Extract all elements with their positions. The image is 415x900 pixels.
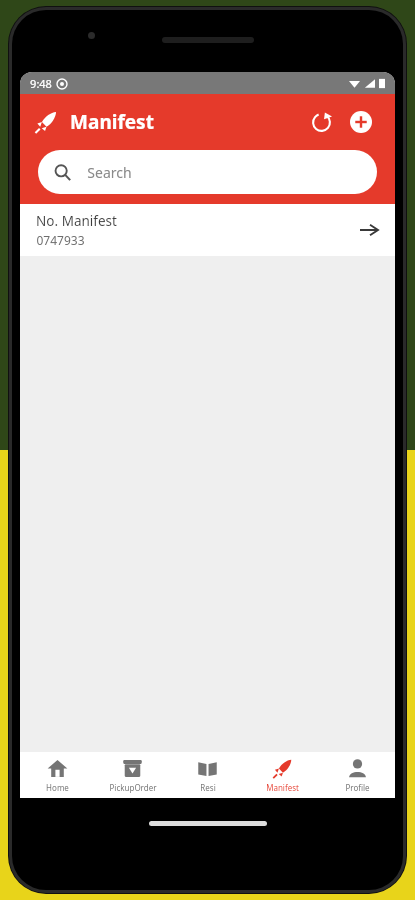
staticText: 9:48 — [30, 76, 52, 91]
staticText: Profile — [345, 782, 370, 793]
staticText: Search — [87, 163, 132, 182]
button[interactable]: Profile — [320, 752, 395, 798]
staticText: PickupOrder — [109, 782, 157, 793]
button[interactable]: Refresh — [301, 102, 341, 142]
staticText: Resi — [200, 782, 216, 793]
button[interactable]: Manifest — [245, 752, 320, 798]
staticText: Manifest — [70, 109, 154, 135]
staticText: Manifest — [266, 782, 299, 793]
staticText: Home — [46, 782, 69, 793]
button[interactable]: PickupOrder — [95, 752, 170, 798]
staticText: No. Manifest — [36, 212, 117, 230]
button[interactable]: Add — [341, 102, 381, 142]
button[interactable]: Home — [20, 752, 95, 798]
button[interactable]: No. Manifest — [20, 204, 395, 256]
button[interactable]: Search — [38, 150, 377, 194]
button[interactable]: Resi — [170, 752, 245, 798]
staticText: 0747933 — [36, 232, 85, 248]
